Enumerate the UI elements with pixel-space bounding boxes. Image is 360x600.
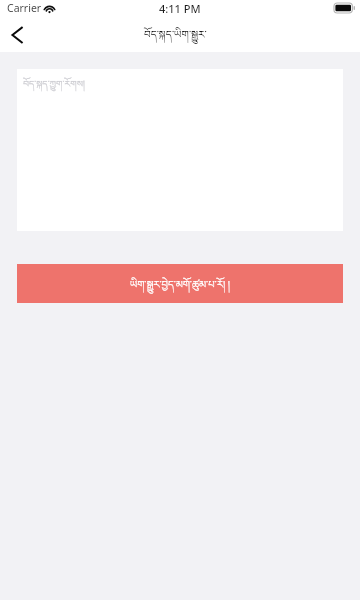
staticText: བོད་སྐད་ཡིག་སྒྱུར་ (144, 23, 207, 52)
staticText: བོད་སྐད་ཀྱུག་རོགས། (23, 74, 85, 100)
button[interactable]: ཡིག་སྒྱུར་བྱེད་མགོ་ཚུམ་པ་རོ། ། (17, 264, 343, 303)
staticText: Carrier (7, 1, 42, 15)
staticText: 4:11 PM (159, 1, 201, 16)
staticText: ཡིག་སྒྱུར་བྱེད་མགོ་ཚུམ་པ་རོ། ། (130, 273, 230, 301)
button[interactable]: Back (0, 21, 34, 52)
